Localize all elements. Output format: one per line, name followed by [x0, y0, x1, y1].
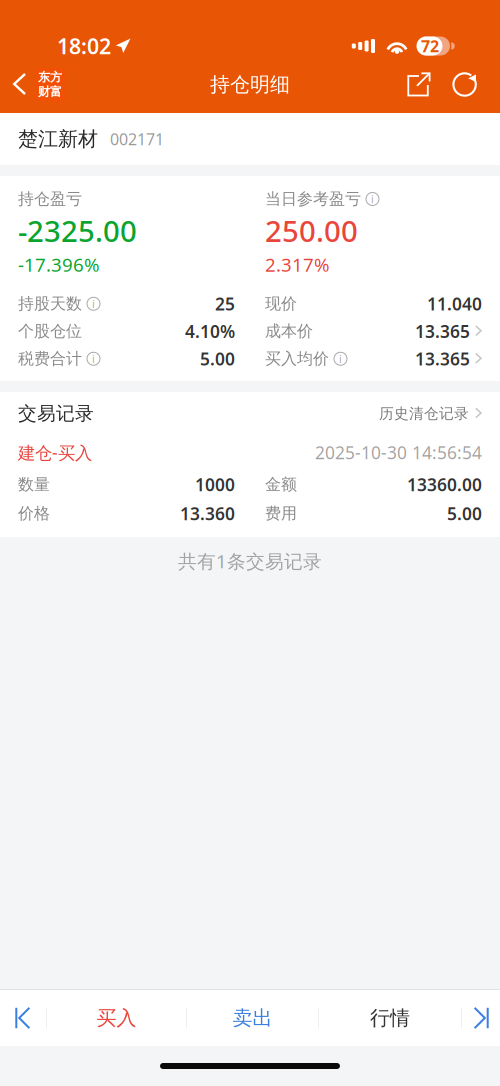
staticText: i [339, 352, 342, 366]
staticText: 13360.00 [407, 473, 482, 496]
staticText: i [371, 192, 374, 206]
staticText: 建仓-买入 [18, 441, 92, 464]
staticText: 东方 [38, 70, 62, 84]
staticText: 财富 [38, 84, 62, 99]
staticText: 5.00 [447, 502, 482, 525]
staticText: 2025-10-30 14:56:54 [315, 441, 482, 464]
staticText: 费用 [265, 504, 297, 523]
button[interactable]: Refresh [442, 56, 488, 113]
staticText: 250.00 [265, 211, 358, 250]
staticText: 2.317% [265, 252, 330, 277]
staticText: 买入 [96, 1006, 136, 1030]
staticText: 金额 [265, 475, 297, 494]
staticText: 成本价 [265, 321, 313, 341]
staticText: 1000 [195, 473, 235, 496]
staticText: 持股天数 [18, 294, 82, 314]
staticText: 13.365 [415, 320, 470, 343]
staticText: 5.00 [200, 347, 235, 370]
staticText: 楚江新材 [18, 127, 98, 151]
staticText: 13.365 [415, 347, 470, 370]
staticText: 个股仓位 [18, 321, 82, 341]
staticText: 共有1条交易记录 [178, 549, 322, 573]
button[interactable]: 卖出 [187, 990, 318, 1046]
button[interactable]: 行情 [319, 990, 461, 1046]
button[interactable]: Back [0, 56, 75, 113]
staticText: 13.360 [180, 502, 235, 525]
button[interactable]: Last page [462, 990, 500, 1046]
staticText: 交易记录 [18, 402, 94, 425]
staticText: 数量 [18, 475, 50, 494]
staticText: i [92, 352, 95, 366]
staticText: 4.10% [185, 320, 235, 343]
staticText: 18:02 [57, 32, 111, 60]
staticText: 11.040 [427, 292, 482, 315]
staticText: 税费合计 [18, 349, 82, 369]
staticText: -17.396% [18, 252, 100, 277]
staticText: 持仓明细 [210, 72, 290, 97]
staticText: i [92, 297, 95, 311]
button[interactable]: 历史清仓记录 [379, 404, 482, 422]
staticText: 002171 [110, 128, 164, 150]
staticText: 买入均价 [265, 349, 329, 369]
staticText: 卖出 [232, 1006, 272, 1030]
staticText: 现价 [265, 294, 297, 314]
staticText: 行情 [370, 1006, 410, 1030]
staticText: 72 [421, 35, 439, 57]
staticText: 历史清仓记录 [379, 404, 469, 422]
staticText: -2325.00 [18, 211, 137, 250]
button[interactable]: Share [396, 56, 442, 113]
staticText: 25 [215, 292, 235, 315]
button[interactable]: First page [0, 990, 46, 1046]
button[interactable]: 买入 [47, 990, 186, 1046]
staticText: 当日参考盈亏 [265, 189, 361, 209]
staticText: 持仓盈亏 [18, 189, 82, 209]
staticText: 价格 [18, 504, 50, 523]
